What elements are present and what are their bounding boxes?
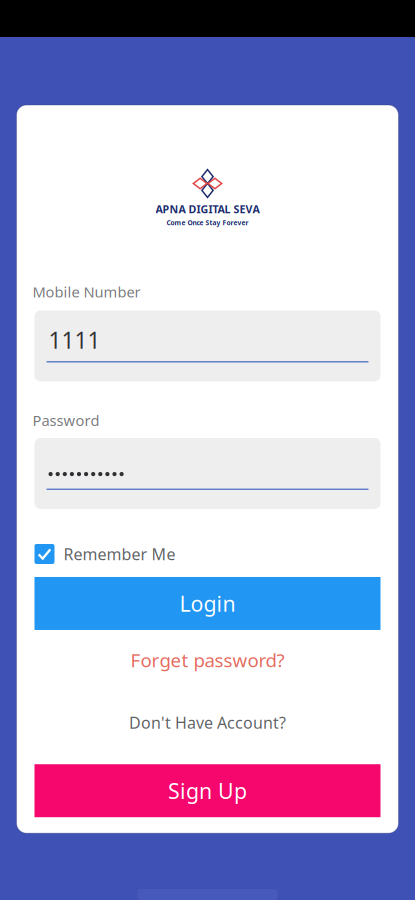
button[interactable]: Sign Up: [34, 764, 380, 817]
staticText: Sign Up: [168, 777, 247, 805]
button[interactable]: Remember Me: [16, 541, 398, 567]
staticText: Come Once Stay Forever: [166, 218, 248, 227]
button[interactable]: Login: [34, 577, 380, 630]
staticText: 1111: [48, 325, 100, 355]
staticText: Mobile Number: [32, 282, 140, 301]
staticText: Remember Me: [63, 543, 175, 565]
staticText: Password: [32, 410, 99, 430]
staticText: Login: [179, 589, 235, 618]
staticText: APNA DIGITAL SEVA: [155, 202, 259, 216]
button[interactable]: Forget password?: [16, 644, 398, 676]
staticText: Don't Have Account?: [129, 712, 286, 733]
staticText: Forget password?: [130, 648, 284, 672]
